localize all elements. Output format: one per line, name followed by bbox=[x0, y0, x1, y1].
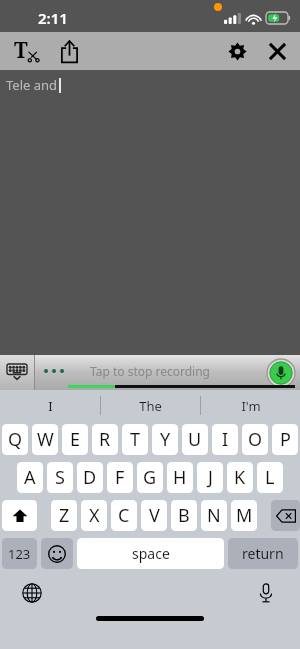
button[interactable]: D bbox=[77, 462, 103, 493]
staticText: T bbox=[14, 36, 28, 65]
staticText: W bbox=[37, 427, 54, 452]
button[interactable]: Close bbox=[260, 34, 294, 68]
staticText: S bbox=[55, 465, 65, 490]
button[interactable]: Backspace bbox=[271, 500, 300, 531]
staticText: L bbox=[265, 465, 275, 490]
button[interactable]: W bbox=[32, 424, 58, 455]
button[interactable]: H bbox=[167, 462, 193, 493]
button[interactable]: Z bbox=[51, 500, 77, 531]
button[interactable]: L bbox=[257, 462, 283, 493]
staticText: D bbox=[83, 465, 97, 490]
button[interactable]: Clear formatting bbox=[8, 33, 44, 69]
staticText: U bbox=[188, 427, 202, 452]
button[interactable]: Settings bbox=[220, 34, 254, 68]
button[interactable]: Share bbox=[52, 34, 86, 68]
staticText: 123 bbox=[8, 545, 31, 563]
staticText: I bbox=[48, 397, 53, 415]
button[interactable]: K bbox=[227, 462, 253, 493]
button[interactable]: V bbox=[141, 500, 167, 531]
staticText: O bbox=[248, 427, 263, 452]
staticText: return bbox=[242, 544, 284, 563]
button[interactable]: F bbox=[107, 462, 133, 493]
button[interactable]: U bbox=[182, 424, 208, 455]
button[interactable]: Change keyboard bbox=[18, 579, 46, 607]
staticText: I'm bbox=[241, 397, 261, 415]
staticText: R bbox=[99, 427, 111, 452]
button[interactable]: Tele and bbox=[0, 70, 300, 355]
button[interactable]: Dictate bbox=[252, 579, 280, 607]
button[interactable]: T bbox=[122, 424, 148, 455]
staticText: A bbox=[24, 465, 36, 490]
button[interactable]: M bbox=[231, 500, 257, 531]
staticText: The bbox=[139, 397, 162, 415]
staticText: V bbox=[149, 503, 160, 528]
button[interactable]: Y bbox=[152, 424, 178, 455]
button[interactable]: P bbox=[272, 424, 298, 455]
staticText: B bbox=[178, 503, 190, 528]
button[interactable]: Shift bbox=[2, 500, 37, 531]
button[interactable]: B bbox=[171, 500, 197, 531]
button[interactable]: A bbox=[17, 462, 43, 493]
button[interactable]: J bbox=[197, 462, 223, 493]
staticText: Q bbox=[8, 427, 23, 452]
staticText: I bbox=[222, 427, 229, 452]
button[interactable]: G bbox=[137, 462, 163, 493]
staticText: M bbox=[236, 503, 253, 528]
button[interactable]: The bbox=[101, 390, 200, 421]
button[interactable]: return bbox=[228, 538, 298, 569]
staticText: N bbox=[207, 503, 221, 528]
button[interactable]: R bbox=[92, 424, 118, 455]
staticText: K bbox=[234, 465, 246, 490]
button[interactable]: Emoji bbox=[41, 538, 73, 569]
button[interactable]: I bbox=[0, 390, 100, 421]
button[interactable]: Q bbox=[2, 424, 28, 455]
button[interactable]: I bbox=[212, 424, 238, 455]
staticText: X bbox=[89, 503, 100, 528]
button[interactable]: 123 bbox=[2, 538, 37, 569]
staticText: space bbox=[132, 544, 170, 563]
staticText: H bbox=[173, 465, 187, 490]
staticText: G bbox=[143, 465, 157, 490]
button[interactable]: N bbox=[201, 500, 227, 531]
button[interactable]: space bbox=[77, 538, 224, 569]
staticText: J bbox=[208, 465, 213, 490]
staticText: 2:11 bbox=[38, 8, 68, 28]
button[interactable]: O bbox=[242, 424, 268, 455]
staticText: Tele and bbox=[6, 76, 58, 94]
staticText: F bbox=[115, 465, 125, 490]
button[interactable]: S bbox=[47, 462, 73, 493]
staticText: P bbox=[280, 427, 291, 452]
button[interactable]: More options bbox=[44, 369, 64, 373]
staticText: Tap to stop recording bbox=[90, 363, 210, 379]
button[interactable]: Stop recording bbox=[267, 359, 295, 387]
button[interactable]: E bbox=[62, 424, 88, 455]
staticText: C bbox=[118, 503, 130, 528]
staticText: Y bbox=[160, 427, 171, 452]
button[interactable]: X bbox=[81, 500, 107, 531]
button[interactable]: I'm bbox=[201, 390, 300, 421]
button[interactable]: C bbox=[111, 500, 137, 531]
button[interactable]: Hide keyboard bbox=[0, 355, 34, 390]
staticText: Z bbox=[59, 503, 70, 528]
staticText: T bbox=[130, 427, 141, 452]
staticText: E bbox=[70, 427, 81, 452]
